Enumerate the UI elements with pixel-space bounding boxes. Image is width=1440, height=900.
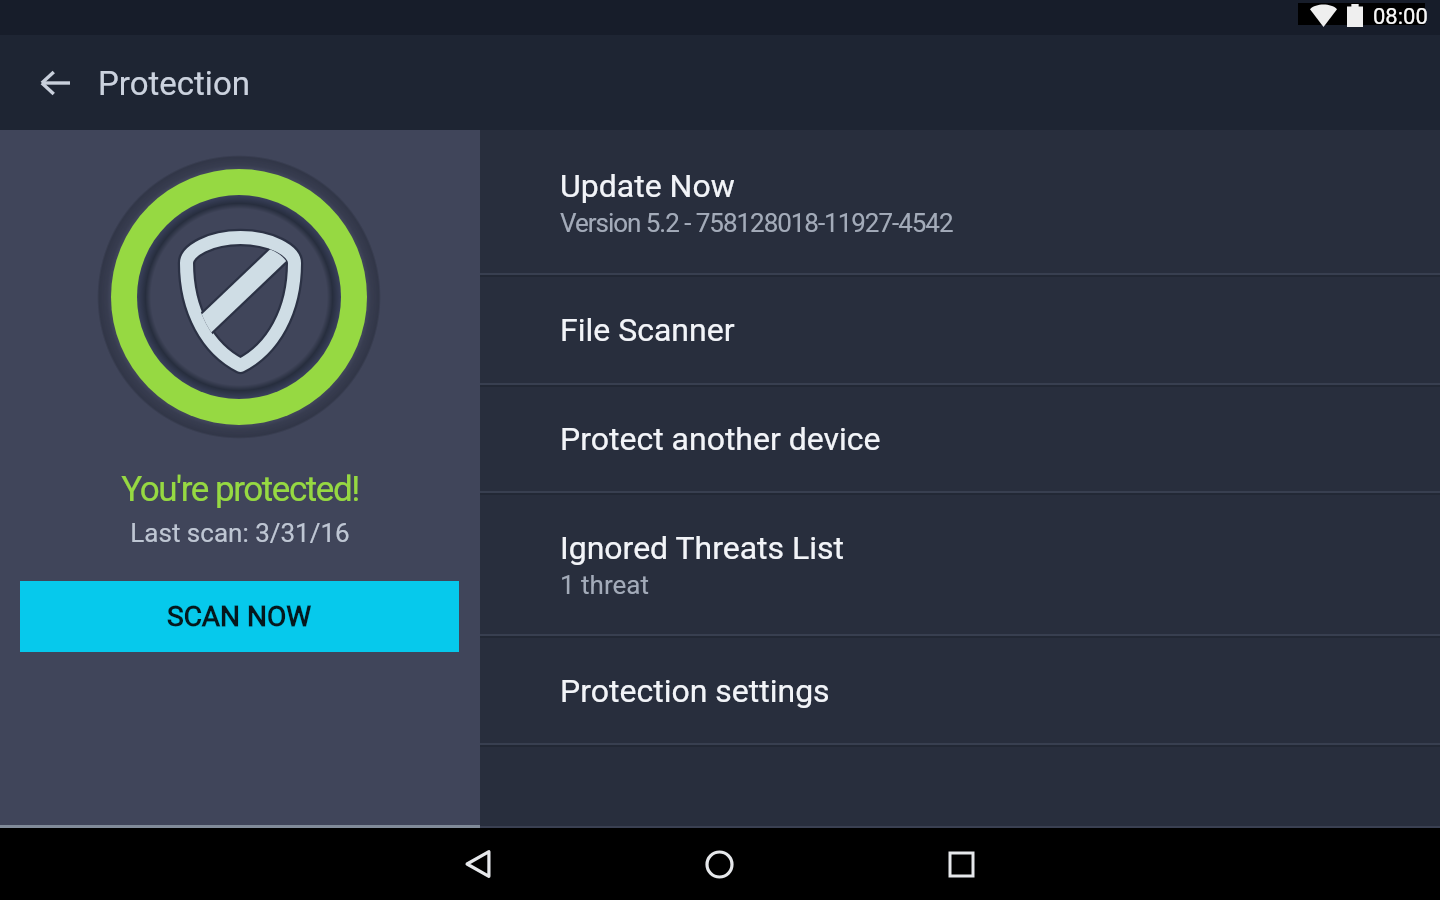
staticText: Update Now bbox=[560, 167, 735, 205]
staticText: Protect another device bbox=[560, 420, 881, 458]
button[interactable]: Protection settings bbox=[480, 636, 1440, 745]
staticText: 08:00 bbox=[1373, 4, 1428, 30]
staticText: Last scan: 3/31/16 bbox=[0, 518, 480, 548]
button[interactable]: Update Now bbox=[480, 130, 1440, 275]
staticText: Protection bbox=[98, 64, 250, 103]
staticText: Version 5.2 - 758128018-11927-4542 bbox=[560, 208, 953, 238]
staticText: Ignored Threats List bbox=[560, 529, 845, 567]
staticText: SCAN NOW bbox=[167, 600, 312, 633]
button[interactable]: Back bbox=[24, 35, 86, 130]
staticText: Protection settings bbox=[560, 672, 830, 710]
button[interactable]: Back bbox=[448, 828, 508, 900]
staticText: You're protected! bbox=[0, 469, 480, 510]
button[interactable]: Ignored Threats List bbox=[480, 493, 1440, 636]
button[interactable]: Protect another device bbox=[480, 385, 1440, 493]
button[interactable]: Home bbox=[689, 828, 749, 900]
staticText: 1 threat bbox=[560, 570, 649, 600]
staticText: File Scanner bbox=[560, 311, 735, 349]
button[interactable]: SCAN NOW bbox=[20, 581, 459, 652]
button[interactable]: Recents bbox=[931, 828, 991, 900]
button[interactable]: File Scanner bbox=[480, 275, 1440, 385]
